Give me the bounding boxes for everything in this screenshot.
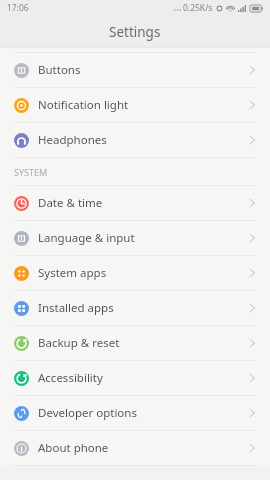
staticText: Settings (109, 23, 161, 41)
button[interactable]: Notification light (0, 88, 270, 122)
staticText: Developer options (38, 405, 137, 421)
staticText: Language & input (38, 230, 135, 246)
button[interactable]: Date & time (0, 186, 270, 220)
staticText: Installed apps (38, 300, 114, 316)
staticText: Buttons (38, 62, 81, 78)
staticText: Backup & reset (38, 335, 120, 351)
staticText: 0.25K/s (183, 2, 213, 14)
button[interactable]: About phone (0, 431, 270, 465)
button[interactable]: System apps (0, 256, 270, 290)
button[interactable]: Backup & reset (0, 326, 270, 360)
button[interactable]: Developer options (0, 396, 270, 430)
staticText: 17:06 (7, 2, 29, 14)
button[interactable]: Buttons (0, 53, 270, 87)
staticText: Headphones (38, 132, 107, 148)
button[interactable]: Accessibility (0, 361, 270, 395)
staticText: Notification light (38, 97, 129, 113)
staticText: System apps (38, 265, 107, 281)
button[interactable]: Installed apps (0, 291, 270, 325)
button[interactable]: Language & input (0, 221, 270, 255)
staticText: SYSTEM (14, 166, 48, 178)
staticText: Accessibility (38, 370, 103, 386)
staticText: Date & time (38, 195, 103, 211)
button[interactable]: Headphones (0, 123, 270, 157)
staticText: About phone (38, 440, 109, 456)
